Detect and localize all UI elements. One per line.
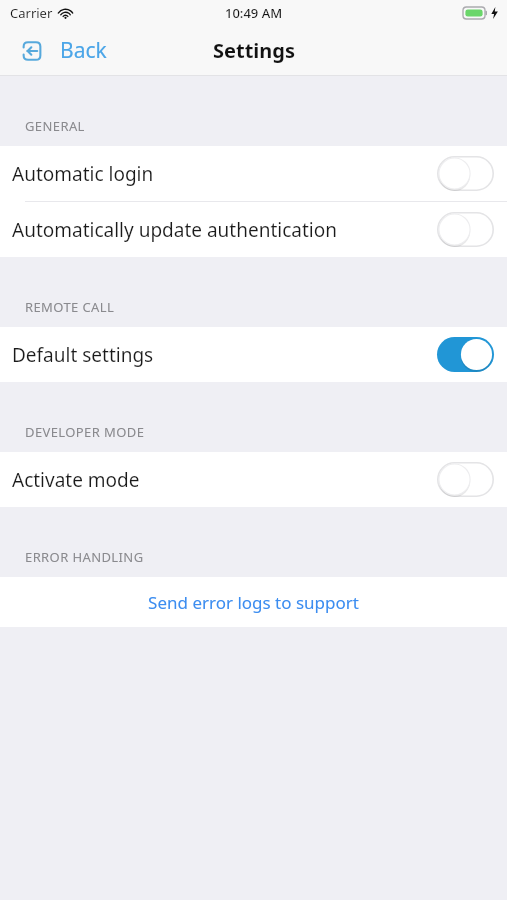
staticText: Settings	[213, 37, 295, 64]
staticText: REMOTE CALL	[25, 298, 115, 316]
button[interactable]: Activate mode	[0, 452, 507, 507]
staticText: GENERAL	[25, 117, 85, 135]
staticText: Activate mode	[12, 467, 427, 493]
other: Exit	[18, 37, 46, 65]
button[interactable]: Toggle off	[435, 461, 495, 498]
staticText: DEVELOPER MODE	[25, 423, 145, 441]
button[interactable]: Automatically update authentication	[0, 202, 507, 257]
staticText: Automatic login	[12, 161, 427, 187]
staticText: Automatically update authentication	[12, 217, 427, 243]
button[interactable]: Toggle off	[435, 155, 495, 192]
button[interactable]: Send error logs to support	[0, 577, 507, 627]
staticText: Back	[60, 36, 107, 65]
button[interactable]: Exit	[18, 36, 107, 65]
button[interactable]: Automatic login	[0, 146, 507, 201]
staticText: 10:49 AM	[225, 4, 283, 22]
staticText: Carrier	[10, 4, 53, 22]
staticText: Send error logs to support	[148, 591, 359, 614]
staticText: ERROR HANDLING	[25, 548, 144, 566]
staticText: Default settings	[12, 342, 427, 368]
button[interactable]: Toggle on	[435, 336, 495, 373]
button[interactable]: Toggle off	[435, 211, 495, 248]
button[interactable]: Default settings	[0, 327, 507, 382]
